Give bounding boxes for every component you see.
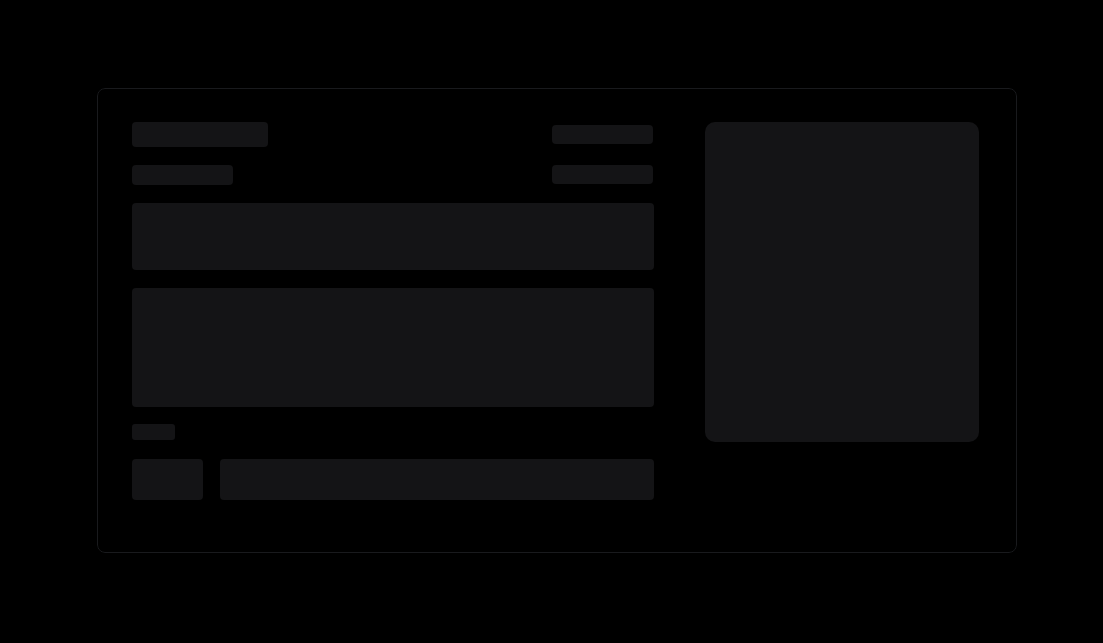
- button[interactable]: Content card, loading: [97, 88, 1017, 553]
